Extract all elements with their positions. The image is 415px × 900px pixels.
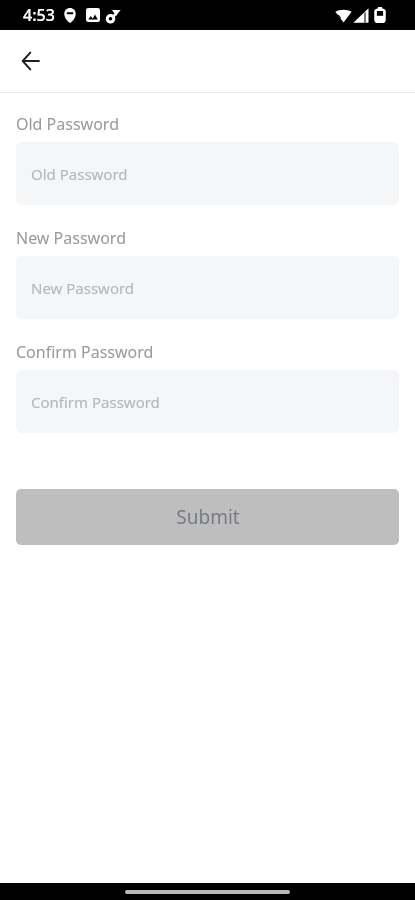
button[interactable]: Back <box>11 41 51 81</box>
button[interactable]: Old Password <box>16 142 399 205</box>
staticText: Old Password <box>31 164 128 184</box>
button[interactable]: Submit <box>16 489 399 545</box>
button[interactable]: Confirm Password <box>16 370 399 433</box>
staticText: New Password <box>16 227 126 249</box>
staticText: Submit <box>176 504 240 530</box>
button[interactable]: New Password <box>16 256 399 319</box>
staticText: New Password <box>31 278 135 298</box>
staticText: Confirm Password <box>16 341 154 363</box>
staticText: Confirm Password <box>31 392 160 412</box>
staticText: Old Password <box>16 113 119 135</box>
staticText: 4:53 <box>23 4 55 26</box>
